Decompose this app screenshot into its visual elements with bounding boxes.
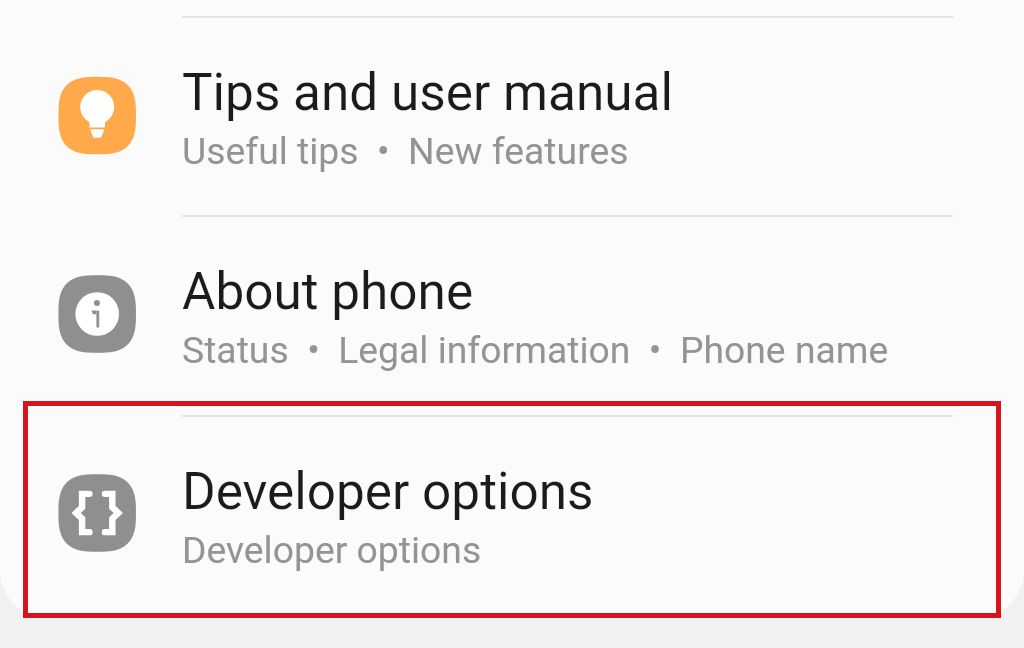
staticText: Developer options: [182, 461, 594, 521]
staticText: Useful tips • New features: [182, 129, 629, 173]
button[interactable]: Tips and user manual: [0, 18, 1024, 215]
staticText: Status • Legal information • Phone name: [182, 328, 889, 372]
staticText: About phone: [182, 261, 474, 321]
staticText: Tips and user manual: [182, 62, 673, 122]
button[interactable]: Developer options: [0, 417, 1024, 614]
staticText: Developer options: [182, 528, 482, 572]
button[interactable]: About phone: [0, 217, 1024, 415]
